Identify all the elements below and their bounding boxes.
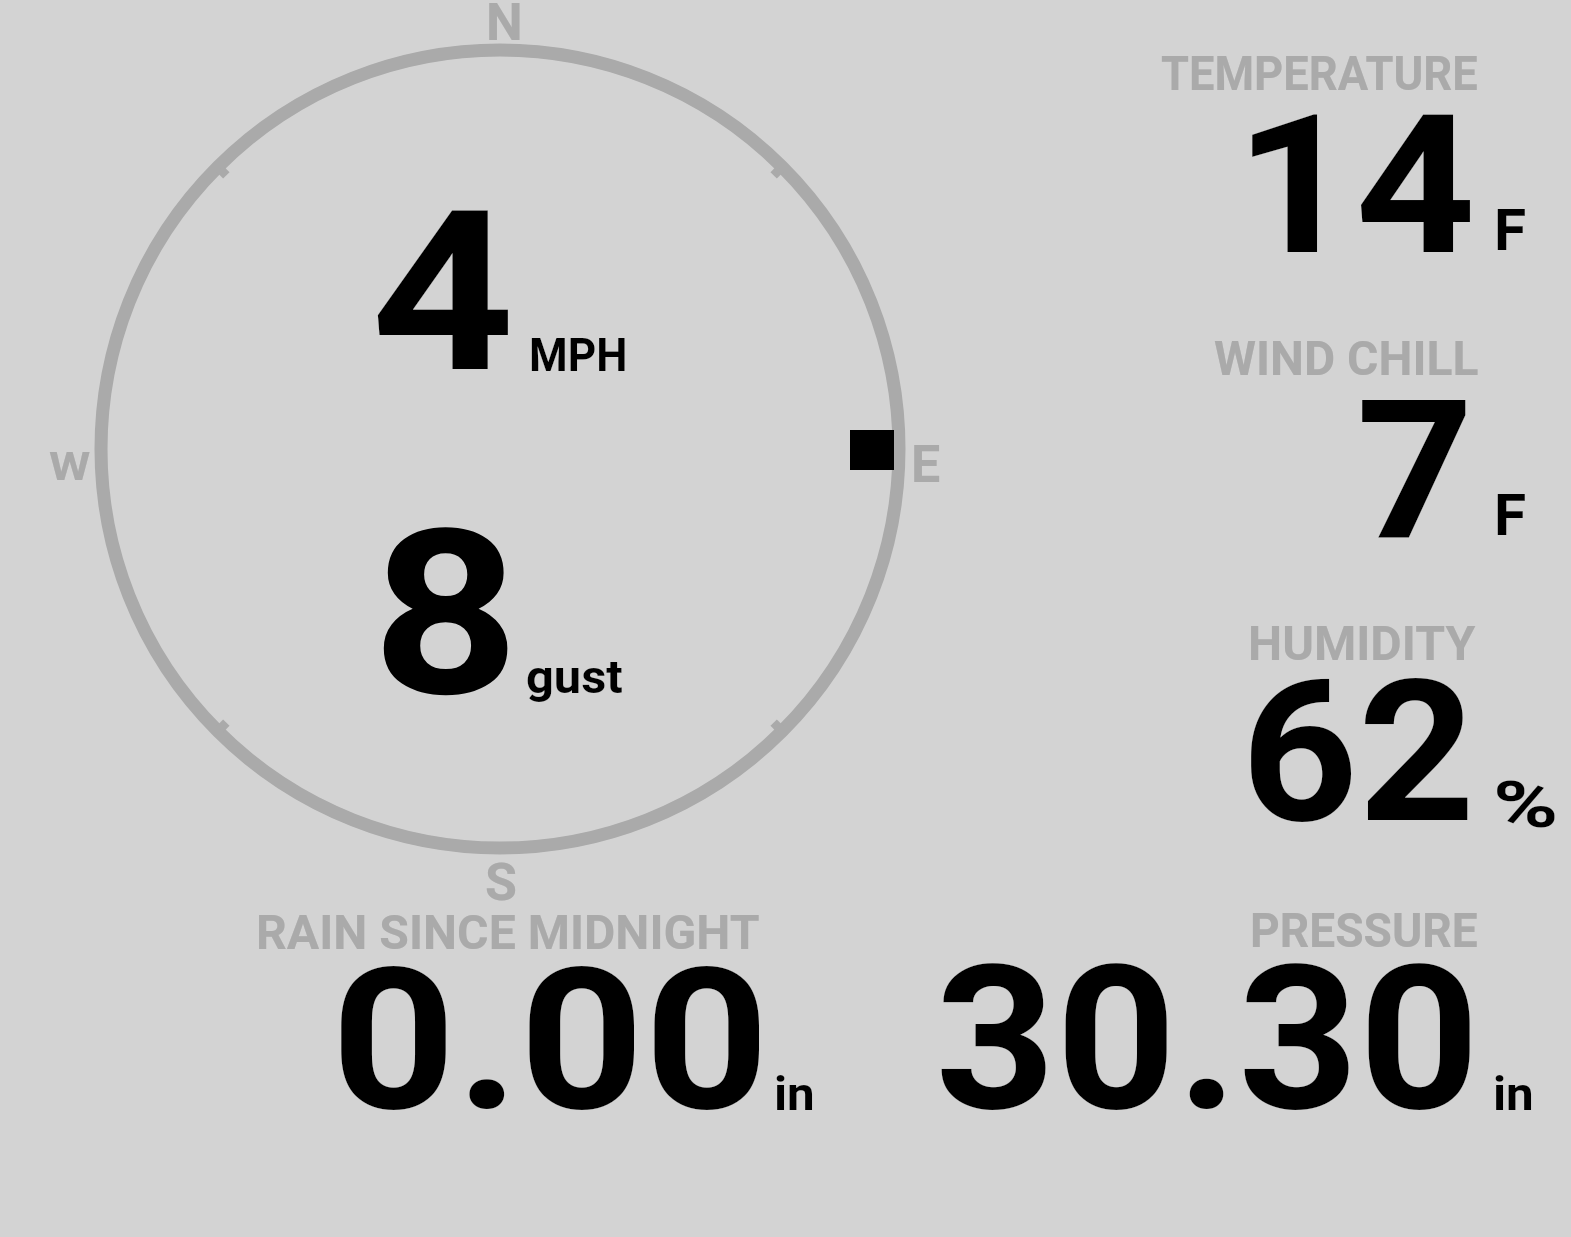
staticText: HUMIDITY bbox=[1248, 615, 1475, 671]
staticText: 62 bbox=[1241, 637, 1476, 868]
button[interactable]: Wind 4 miles per hour gusting 8, directi… bbox=[90, 40, 910, 860]
button[interactable]: Humidity 62 percent bbox=[1120, 600, 1560, 850]
staticText: E bbox=[911, 434, 941, 495]
button[interactable]: Wind chill 7 degrees Fahrenheit bbox=[1120, 315, 1560, 565]
staticText: 0.00 bbox=[331, 926, 770, 1156]
staticText: in bbox=[774, 1066, 815, 1121]
staticText: 8 bbox=[372, 480, 520, 750]
staticText: in bbox=[1493, 1066, 1534, 1121]
button[interactable]: Temperature 14 degrees Fahrenheit bbox=[1120, 30, 1560, 280]
staticText: 7 bbox=[1356, 358, 1474, 584]
button[interactable]: Rain since midnight 0.00 inches bbox=[220, 895, 840, 1125]
staticText: F bbox=[1494, 196, 1526, 264]
staticText: WIND CHILL bbox=[1214, 330, 1479, 386]
staticText: gust bbox=[526, 650, 623, 704]
staticText: % bbox=[1493, 767, 1558, 843]
button[interactable]: Pressure 30.30 inches bbox=[900, 895, 1550, 1125]
staticText: 14 bbox=[1235, 73, 1476, 299]
staticText: S bbox=[485, 852, 517, 913]
staticText: F bbox=[1494, 481, 1526, 549]
staticText: RAIN SINCE MIDNIGHT bbox=[256, 904, 760, 960]
staticText: 30.30 bbox=[935, 922, 1480, 1156]
staticText: N bbox=[486, 0, 523, 53]
staticText: MPH bbox=[529, 328, 628, 382]
staticText: 4 bbox=[371, 163, 515, 423]
staticText: PRESSURE bbox=[1250, 902, 1478, 958]
staticText: TEMPERATURE bbox=[1161, 45, 1478, 101]
staticText: W bbox=[49, 444, 91, 490]
